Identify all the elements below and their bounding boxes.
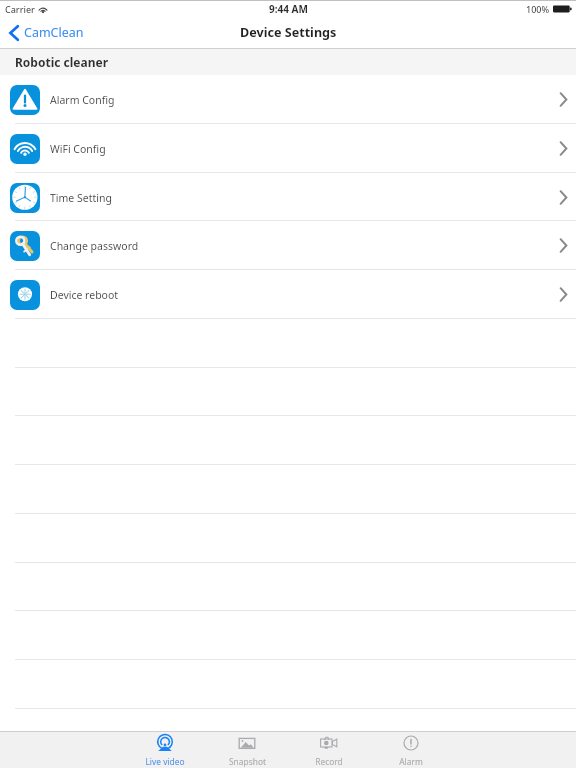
button[interactable]: WiFi Config <box>0 124 576 173</box>
button[interactable]: Live video <box>124 732 206 768</box>
button[interactable]: Device reboot <box>0 270 576 319</box>
staticText: Snapshot <box>229 756 266 767</box>
staticText: Device Settings <box>240 24 337 41</box>
staticText: CamClean <box>24 24 84 41</box>
button[interactable]: Change password <box>0 221 576 270</box>
button[interactable]: Alarm <box>370 732 452 768</box>
staticText: Record <box>315 756 343 767</box>
staticText: Time Setting <box>50 191 112 205</box>
button[interactable]: Alarm Config <box>0 75 576 124</box>
button[interactable]: Record <box>288 732 370 768</box>
staticText: Device reboot <box>50 288 119 302</box>
staticText: Robotic cleaner <box>15 54 109 70</box>
button[interactable]: Snapshot <box>206 732 288 768</box>
button[interactable]: Time Setting <box>0 173 576 222</box>
staticText: Carrier <box>5 3 35 15</box>
staticText: Alarm Config <box>50 93 115 107</box>
staticText: Live video <box>145 756 185 767</box>
staticText: Alarm <box>399 756 423 767</box>
button[interactable]: Back to CamClean <box>0 20 94 49</box>
staticText: Change password <box>50 239 139 253</box>
staticText: 100% <box>526 3 550 15</box>
staticText: 9:44 AM <box>269 2 308 16</box>
staticText: WiFi Config <box>50 142 106 156</box>
